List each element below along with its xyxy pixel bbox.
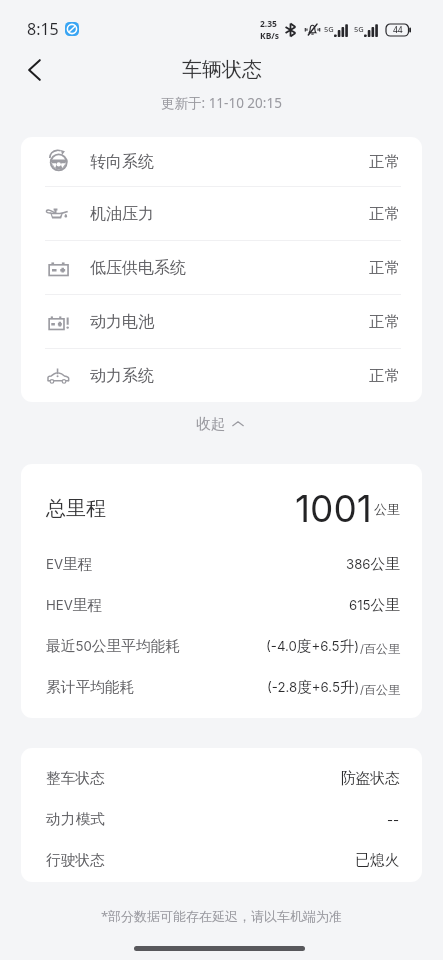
staticText: EV里程 — [46, 555, 93, 574]
staticText: 已熄火 — [355, 851, 400, 870]
staticText: 车辆状态 — [182, 57, 262, 82]
staticText: 2.35 — [260, 18, 277, 30]
button[interactable]: 返回 — [13, 48, 57, 92]
staticText: 动力模式 — [46, 810, 105, 829]
staticText: KB/s — [260, 30, 280, 42]
staticText: *部分数据可能存在延迟，请以车机端为准 — [0, 907, 443, 925]
staticText: 更新于: 11-10 20:15 — [161, 94, 282, 112]
staticText: 整车状态 — [46, 769, 105, 788]
button[interactable]: 低压供电系统 — [21, 241, 422, 294]
staticText: 行驶状态 — [46, 851, 105, 870]
button[interactable]: 动力系统 — [21, 349, 422, 402]
staticText: HEV里程 — [46, 596, 103, 615]
button[interactable]: 收起 — [0, 402, 443, 464]
staticText: 5G — [354, 24, 364, 34]
staticText: 收起 — [196, 415, 226, 434]
staticText: 44 — [393, 24, 403, 36]
staticText: 动力电池 — [90, 312, 154, 332]
staticText: 正常 — [369, 152, 400, 172]
staticText: 正常 — [369, 366, 400, 386]
staticText: /百公里 — [360, 641, 400, 656]
staticText: 386公里 — [346, 555, 400, 574]
staticText: (-4.0度+6.5升) — [266, 637, 360, 656]
staticText: 1001 — [295, 486, 372, 531]
staticText: 累计平均能耗 — [46, 678, 135, 697]
button[interactable]: 动力电池 — [21, 295, 422, 348]
staticText: 公里 — [374, 501, 400, 517]
staticText: 615公里 — [349, 596, 400, 615]
staticText: 正常 — [369, 204, 400, 224]
staticText: 转向系统 — [90, 152, 154, 172]
staticText: 总里程 — [46, 496, 106, 521]
button[interactable]: 机油压力 — [21, 187, 422, 240]
staticText: /百公里 — [360, 682, 400, 697]
staticText: (-2.8度+6.5升) — [267, 678, 360, 697]
staticText: 5G — [324, 24, 334, 34]
staticText: 正常 — [369, 258, 400, 278]
staticText: 机油压力 — [90, 204, 154, 224]
staticText: -- — [387, 812, 400, 828]
button[interactable]: 转向系统 — [21, 137, 422, 186]
staticText: 防盗状态 — [341, 769, 400, 788]
staticText: 动力系统 — [90, 366, 154, 386]
staticText: 低压供电系统 — [90, 258, 186, 278]
staticText: 正常 — [369, 312, 400, 332]
staticText: 最近50公里平均能耗 — [46, 637, 180, 656]
staticText: 8:15 — [27, 18, 59, 40]
